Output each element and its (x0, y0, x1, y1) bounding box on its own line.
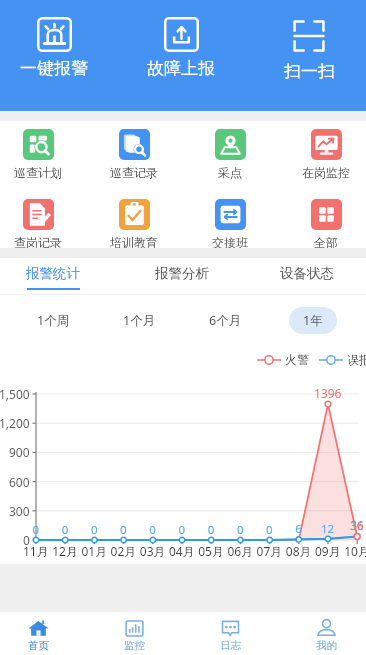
button[interactable]: 巡查记录 (89, 129, 179, 180)
staticText: 交接班 (212, 235, 248, 248)
staticText: 监控 (124, 639, 145, 652)
staticText: 报警统计 (26, 265, 80, 282)
button[interactable]: 报警统计 (0, 258, 108, 295)
button[interactable]: Scan (254, 17, 364, 82)
button[interactable]: 误报 (319, 352, 366, 367)
staticText: 故障上报 (147, 58, 215, 79)
button[interactable]: One-key alarm (0, 17, 109, 79)
button[interactable]: 火警 (257, 352, 309, 367)
button[interactable]: Monitor (94, 618, 174, 652)
staticText: 日志 (220, 639, 241, 652)
button[interactable]: 全部 (281, 199, 366, 248)
button[interactable]: 1个月 (109, 307, 170, 334)
staticText: 报警分析 (155, 265, 209, 282)
staticText: 扫一扫 (284, 61, 335, 82)
staticText: 全部 (314, 235, 338, 248)
staticText: 巡查记录 (110, 165, 158, 180)
staticText: 一键报警 (20, 58, 88, 79)
button[interactable]: 交接班 (185, 199, 275, 248)
button[interactable]: 巡查计划 (0, 129, 83, 180)
staticText: 火警 (285, 352, 309, 367)
button[interactable]: 查岗记录 (0, 199, 83, 248)
other: Scan (290, 17, 328, 55)
button[interactable]: Mine (286, 618, 366, 652)
button[interactable]: Report fault (126, 17, 236, 79)
button[interactable]: 采点 (185, 129, 275, 180)
staticText: 我的 (316, 639, 337, 652)
button[interactable]: 1年 (289, 307, 337, 334)
staticText: 误报 (347, 352, 366, 367)
other: Mine (316, 618, 337, 639)
button[interactable]: 培训教育 (89, 199, 179, 248)
staticText: 设备状态 (280, 265, 334, 282)
staticText: 1个周 (37, 312, 70, 329)
button[interactable]: 在岗监控 (281, 129, 366, 180)
other: Report fault (164, 17, 199, 52)
button[interactable]: 设备状态 (252, 258, 362, 295)
button[interactable]: 6个月 (195, 307, 256, 334)
staticText: 首页 (28, 639, 49, 652)
staticText: 采点 (218, 165, 242, 180)
staticText: 6个月 (209, 312, 242, 329)
button[interactable]: Home (0, 618, 78, 652)
button[interactable]: 报警分析 (127, 258, 237, 295)
other: One-key alarm (37, 17, 72, 52)
button[interactable]: 1个周 (23, 307, 84, 334)
button[interactable]: Log (190, 618, 270, 652)
staticText: 巡查计划 (14, 165, 62, 180)
staticText: 查岗记录 (14, 235, 62, 248)
other: Monitor (124, 618, 145, 639)
other: Log (220, 618, 241, 639)
staticText: 培训教育 (110, 235, 158, 248)
other: Home (28, 618, 49, 639)
staticText: 在岗监控 (302, 165, 350, 180)
staticText: 1个月 (123, 312, 156, 329)
staticText: 1年 (303, 312, 323, 329)
